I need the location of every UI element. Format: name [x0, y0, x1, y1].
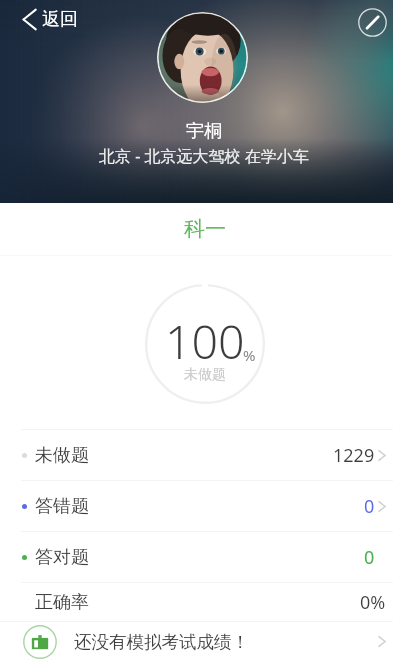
staticText: 答错题 — [35, 495, 89, 518]
staticText: 北京 - 北京远大驾校 在学小车 — [99, 145, 309, 167]
staticText: 还没有模拟考试成绩！ — [74, 631, 249, 653]
staticText: 1229 — [333, 443, 375, 468]
staticText: 未做题 — [184, 366, 226, 384]
button[interactable]: 答错题 — [0, 481, 393, 531]
staticText: 答对题 — [35, 546, 89, 569]
staticText: 科一 — [184, 216, 226, 242]
staticText: % — [243, 345, 256, 365]
button[interactable]: 正确率 — [0, 583, 393, 621]
staticText: 0 — [364, 545, 375, 570]
staticText: 正确率 — [35, 591, 89, 614]
staticText: 宇桐 — [186, 120, 222, 143]
staticText: 0% — [360, 590, 386, 615]
staticText: 返回 — [42, 8, 78, 31]
button[interactable]: 答对题 — [0, 532, 393, 582]
button[interactable]: Edit profile — [358, 8, 387, 37]
button[interactable]: 还没有模拟考试成绩！ — [0, 622, 393, 661]
staticText: 未做题 — [35, 444, 89, 467]
button[interactable]: 科一 — [0, 203, 393, 255]
staticText: 100 — [165, 309, 245, 372]
staticText: 0 — [364, 494, 375, 519]
button[interactable]: 未做题 — [0, 430, 393, 480]
button[interactable]: 返回 — [16, 4, 86, 35]
